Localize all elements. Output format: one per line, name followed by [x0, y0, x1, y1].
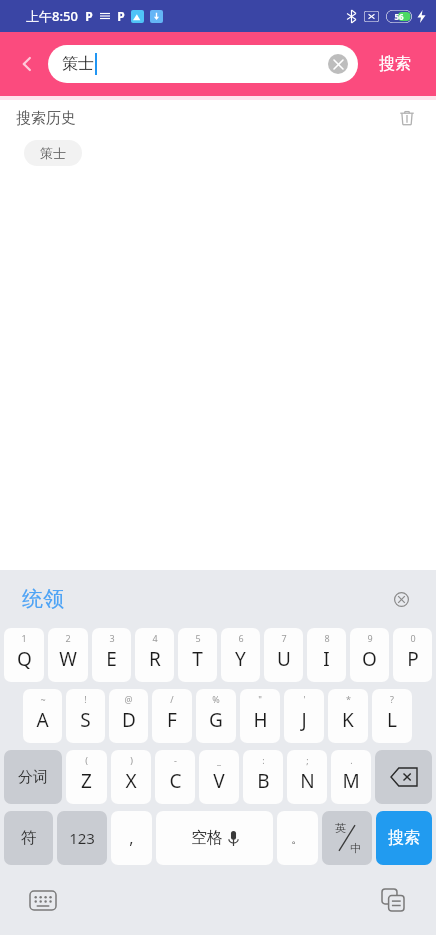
- button[interactable]: Back: [10, 47, 44, 81]
- button[interactable]: *: [328, 689, 368, 743]
- button[interactable]: 搜索: [364, 42, 426, 86]
- staticText: V: [213, 768, 225, 794]
- button[interactable]: 8: [307, 628, 346, 682]
- staticText: P: [117, 8, 125, 24]
- staticText: 。: [291, 830, 304, 846]
- staticText: 7: [281, 632, 287, 644]
- button[interactable]: 6: [221, 628, 260, 682]
- staticText: O: [362, 646, 377, 672]
- staticText: 56: [394, 11, 404, 22]
- button[interactable]: ;: [287, 750, 327, 804]
- staticText: -: [174, 754, 177, 766]
- button[interactable]: 5: [178, 628, 217, 682]
- button[interactable]: 。: [277, 811, 318, 865]
- button[interactable]: 4: [135, 628, 174, 682]
- staticText: _: [217, 754, 221, 766]
- button[interactable]: ,: [111, 811, 152, 865]
- button[interactable]: 符: [4, 811, 53, 865]
- staticText: ): [130, 754, 133, 766]
- staticText: 中: [350, 841, 361, 855]
- button[interactable]: Close suggestions: [388, 586, 414, 612]
- button[interactable]: /: [152, 689, 192, 743]
- staticText: R: [149, 646, 161, 672]
- staticText: S: [80, 707, 91, 733]
- staticText: 2: [65, 632, 71, 644]
- button[interactable]: 9: [350, 628, 389, 682]
- staticText: 8: [324, 632, 330, 644]
- staticText: X: [125, 768, 137, 794]
- staticText: W: [59, 646, 77, 672]
- button[interactable]: :: [243, 750, 283, 804]
- staticText: ~: [40, 693, 46, 705]
- button[interactable]: 0: [393, 628, 432, 682]
- staticText: 123: [69, 828, 95, 848]
- staticText: P: [85, 8, 93, 24]
- button[interactable]: .: [331, 750, 371, 804]
- button[interactable]: Clear: [328, 54, 348, 74]
- button[interactable]: 分词: [4, 750, 62, 804]
- staticText: ?: [390, 693, 394, 705]
- staticText: ": [258, 693, 262, 705]
- button[interactable]: 策士: [24, 140, 82, 166]
- staticText: 空格: [191, 828, 223, 848]
- staticText: 统领: [22, 586, 64, 612]
- staticText: H: [253, 707, 268, 733]
- button[interactable]: Clear history: [392, 103, 422, 133]
- staticText: %: [212, 693, 220, 705]
- staticText: L: [387, 707, 397, 733]
- staticText: 策士: [62, 54, 94, 74]
- button[interactable]: %: [196, 689, 236, 743]
- staticText: G: [209, 707, 223, 733]
- staticText: ': [303, 693, 306, 705]
- button[interactable]: 7: [264, 628, 303, 682]
- staticText: :: [262, 754, 265, 766]
- button[interactable]: Clipboard: [376, 883, 410, 917]
- staticText: 3: [109, 632, 115, 644]
- button[interactable]: Backspace: [375, 750, 432, 804]
- button[interactable]: -: [155, 750, 195, 804]
- button[interactable]: ?: [372, 689, 412, 743]
- staticText: T: [192, 646, 203, 672]
- staticText: E: [106, 646, 117, 672]
- staticText: 搜索历史: [16, 109, 76, 128]
- button[interactable]: ': [284, 689, 324, 743]
- button[interactable]: (: [66, 750, 107, 804]
- staticText: Q: [17, 646, 32, 672]
- staticText: ;: [306, 754, 309, 766]
- staticText: U: [277, 646, 291, 672]
- button[interactable]: 搜索历史: [16, 109, 76, 128]
- staticText: 符: [21, 828, 37, 848]
- button[interactable]: 空格: [156, 811, 273, 865]
- button[interactable]: _: [199, 750, 239, 804]
- staticText: .: [350, 754, 353, 766]
- staticText: 上午8:50: [26, 7, 78, 25]
- button[interactable]: 英: [322, 811, 372, 865]
- staticText: I: [323, 646, 330, 672]
- button[interactable]: 2: [48, 628, 88, 682]
- staticText: N: [300, 768, 315, 794]
- staticText: !: [84, 693, 87, 705]
- staticText: 搜索: [379, 54, 411, 74]
- staticText: *: [346, 693, 351, 705]
- staticText: 策士: [40, 145, 66, 161]
- button[interactable]: ~: [23, 689, 62, 743]
- button[interactable]: 策士: [48, 45, 358, 83]
- staticText: J: [301, 707, 307, 733]
- button[interactable]: 统领: [22, 586, 64, 612]
- button[interactable]: 搜索: [376, 811, 432, 865]
- button[interactable]: ": [240, 689, 280, 743]
- staticText: B: [257, 768, 270, 794]
- staticText: Z: [81, 768, 92, 794]
- button[interactable]: 1: [4, 628, 44, 682]
- button[interactable]: ): [111, 750, 151, 804]
- staticText: 分词: [18, 768, 48, 787]
- staticText: C: [169, 768, 182, 794]
- button[interactable]: 3: [92, 628, 131, 682]
- button[interactable]: !: [66, 689, 105, 743]
- button[interactable]: 123: [57, 811, 107, 865]
- staticText: 搜索: [388, 828, 420, 848]
- staticText: F: [167, 707, 177, 733]
- button[interactable]: @: [109, 689, 148, 743]
- button[interactable]: Switch keyboard: [26, 883, 60, 917]
- staticText: @: [124, 693, 133, 705]
